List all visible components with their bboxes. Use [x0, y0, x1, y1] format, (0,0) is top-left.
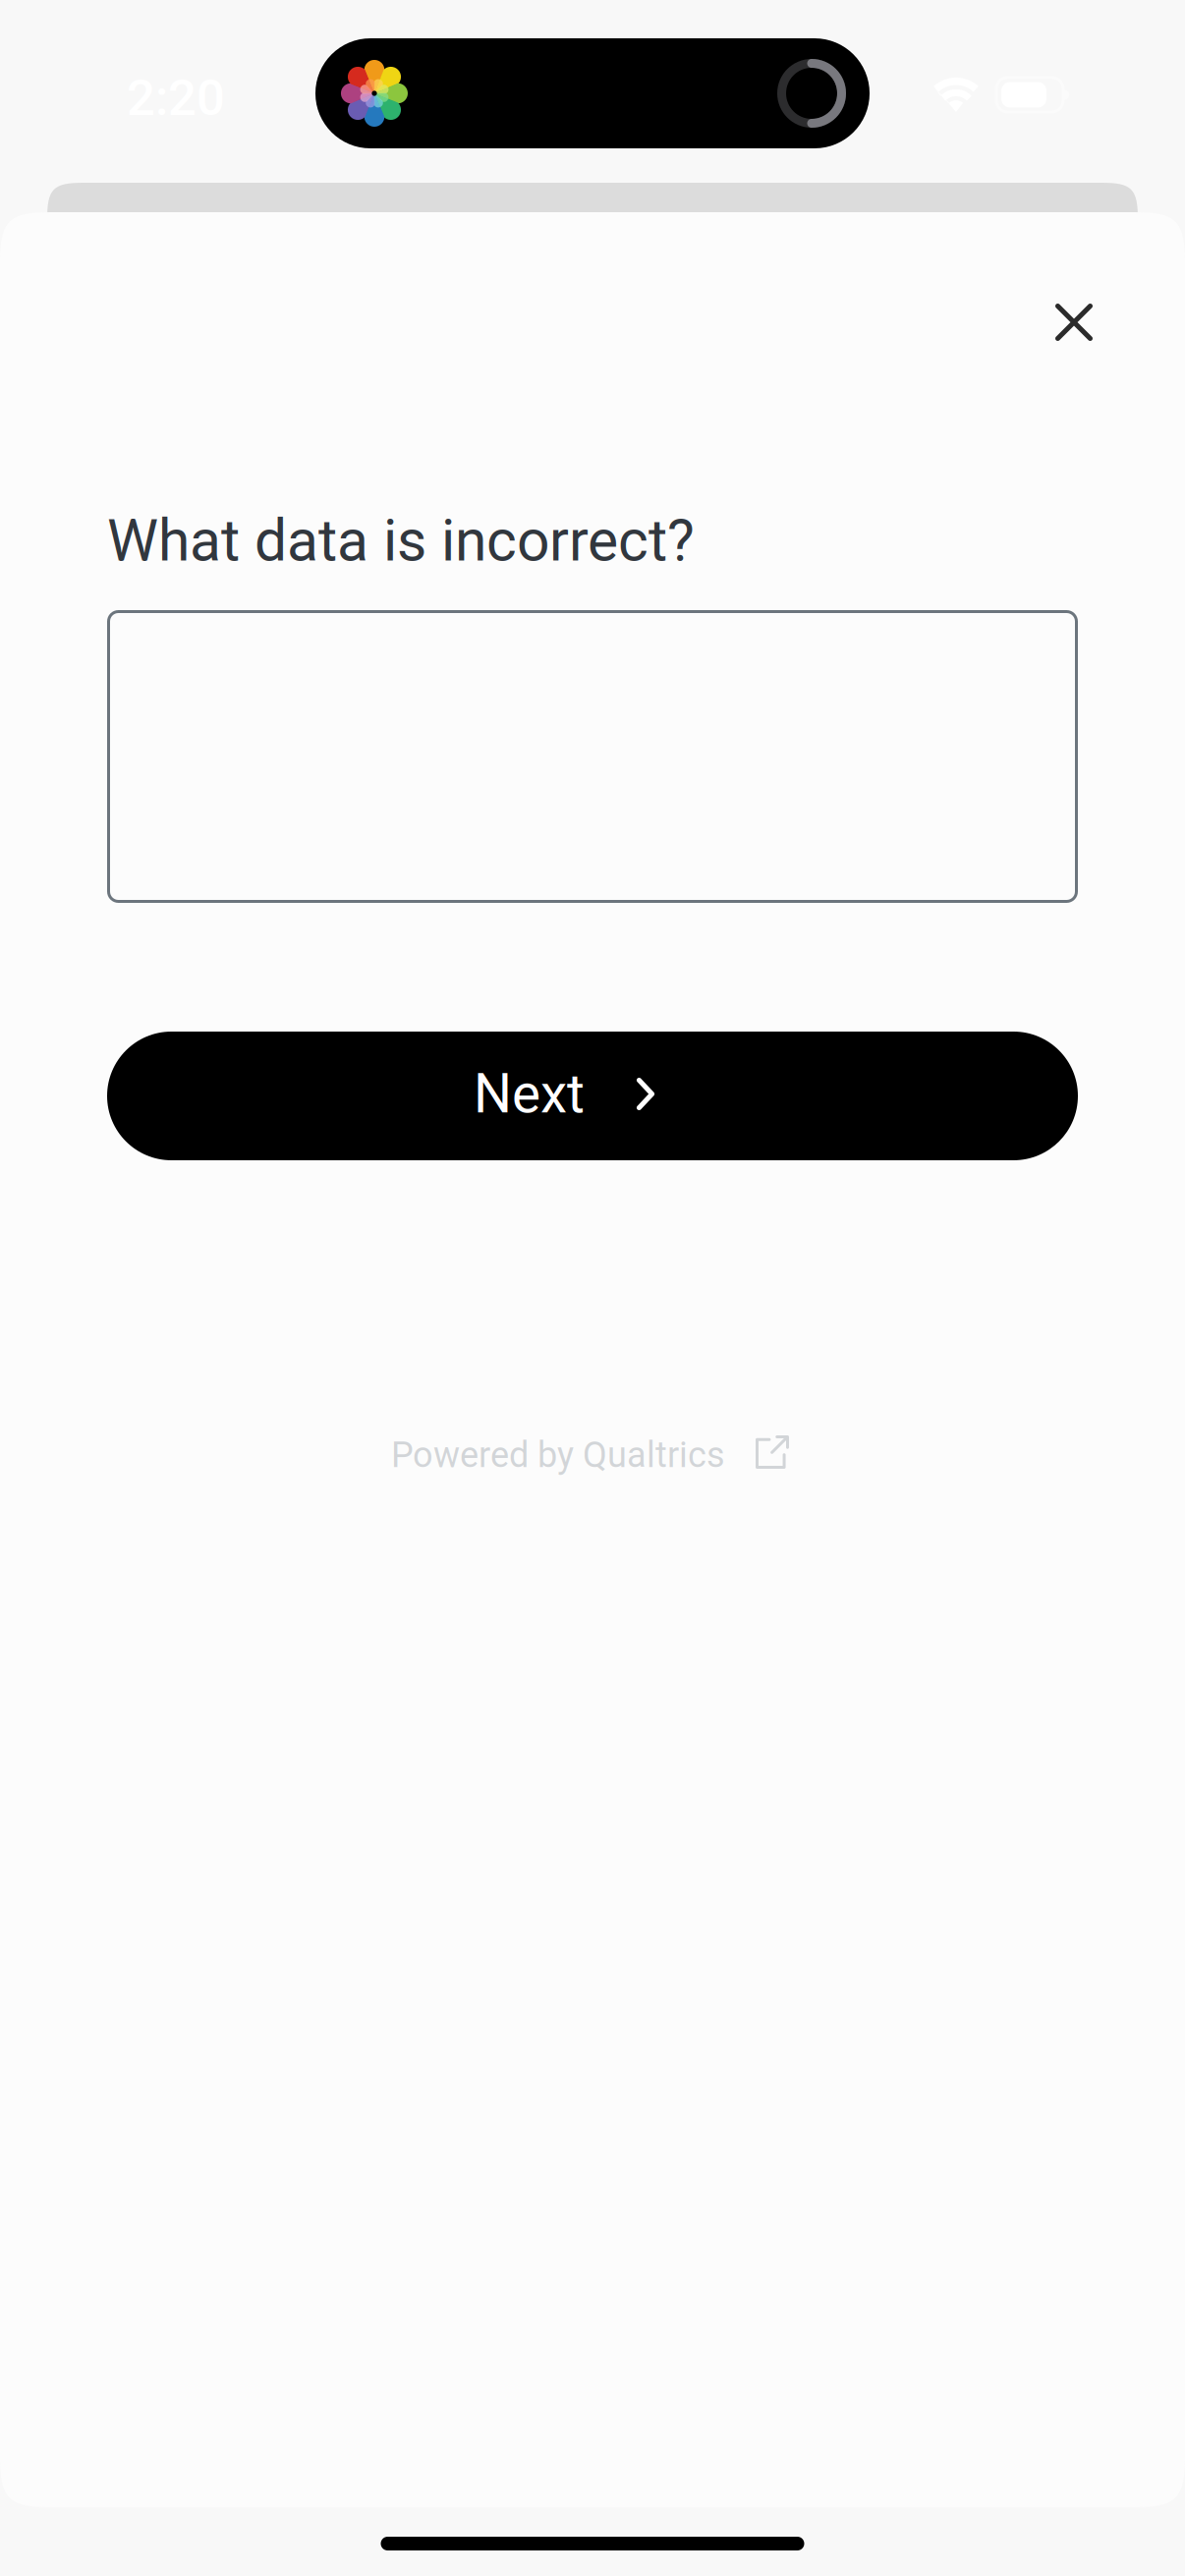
- staticText: Powered by Qualtrics: [391, 1434, 725, 1476]
- staticText: What data is incorrect?: [107, 507, 695, 575]
- button[interactable]: Answer: [107, 610, 1078, 903]
- button[interactable]: Close: [1025, 273, 1123, 371]
- button[interactable]: Next: [107, 1032, 1078, 1160]
- button[interactable]: Powered by Qualtrics: [391, 1420, 786, 1490]
- staticText: Next: [474, 1063, 585, 1126]
